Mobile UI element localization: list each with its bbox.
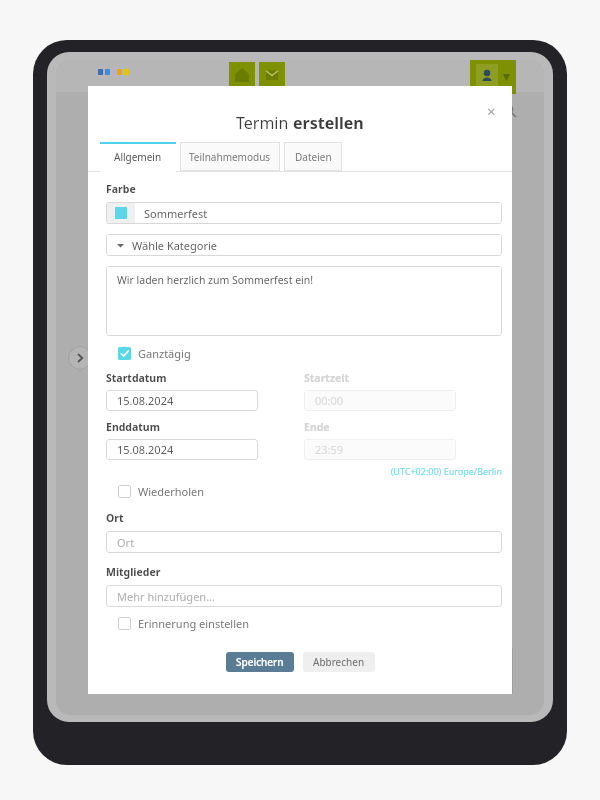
button[interactable]: 00:00 xyxy=(304,390,456,411)
button[interactable]: Wir laden herzlich zum Sommerfest ein! xyxy=(106,266,502,336)
staticText: Enddatum xyxy=(106,420,160,434)
button[interactable]: Messages xyxy=(259,62,285,88)
staticText: 15.08.2024 xyxy=(117,393,174,408)
button[interactable]: 23:59 xyxy=(304,439,456,460)
button[interactable]: Teilnahmemodus xyxy=(180,142,280,171)
button[interactable]: Account xyxy=(470,60,516,94)
staticText: Mehr hinzufügen... xyxy=(117,589,215,604)
staticText: Speichern xyxy=(236,655,284,669)
button[interactable]: Ort xyxy=(106,531,502,553)
staticText: Wähle Kategorie xyxy=(132,238,218,253)
staticText: Ganztägig xyxy=(138,346,191,361)
button[interactable]: Expand sidebar xyxy=(68,346,92,370)
button[interactable]: Sommerfest xyxy=(106,202,502,224)
staticText: 15.08.2024 xyxy=(117,442,174,457)
staticText: (UTC+02:00) Europe/Berlin xyxy=(106,465,502,477)
staticText: × xyxy=(487,101,496,121)
button[interactable]: Speichern xyxy=(226,652,294,672)
button[interactable]: Wähle Kategorie xyxy=(106,234,502,256)
staticText: 23:59 xyxy=(315,442,344,457)
staticText: Startdatum xyxy=(106,371,167,385)
staticText: Startzeit xyxy=(304,371,350,385)
button[interactable]: Mehr hinzufügen... xyxy=(106,585,502,607)
button[interactable]: Ganztägig xyxy=(118,346,191,361)
staticText: Termin xyxy=(236,112,293,134)
staticText: 00:00 xyxy=(315,393,344,408)
button[interactable]: Allgemein xyxy=(100,142,176,172)
button[interactable]: Abbrechen xyxy=(303,652,375,672)
button[interactable]: Dateien xyxy=(284,142,342,171)
staticText: Teilnahmemodus xyxy=(189,150,271,164)
staticText: Sommerfest xyxy=(144,206,208,221)
staticText: erstellen xyxy=(293,112,364,134)
staticText: Allgemein xyxy=(114,150,162,164)
staticText: Mitglieder xyxy=(106,565,161,579)
button[interactable]: 15.08.2024 xyxy=(106,439,258,460)
staticText: Wir laden herzlich zum Sommerfest ein! xyxy=(117,273,314,287)
staticText: Wiederholen xyxy=(138,484,205,499)
staticText: Erinnerung einstellen xyxy=(138,616,250,631)
button[interactable]: Wiederholen xyxy=(118,484,205,499)
staticText: Ort xyxy=(106,511,124,525)
staticText: Farbe xyxy=(106,182,136,196)
staticText: Ende xyxy=(304,420,330,434)
staticText: Dateien xyxy=(295,150,332,164)
staticText: Ort xyxy=(117,535,135,550)
button[interactable]: Close xyxy=(480,100,502,122)
button[interactable]: Erinnerung einstellen xyxy=(118,616,250,631)
button[interactable]: Home xyxy=(229,62,255,88)
button[interactable]: 15.08.2024 xyxy=(106,390,258,411)
staticText: Abbrechen xyxy=(313,655,365,669)
other: Search xyxy=(503,104,516,117)
